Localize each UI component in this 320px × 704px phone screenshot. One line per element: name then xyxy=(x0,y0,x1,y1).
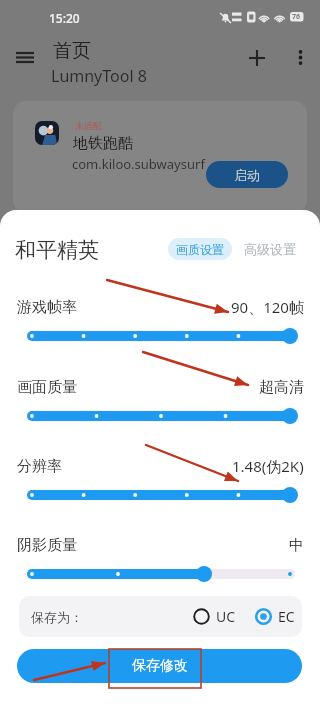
button[interactable]: 启动 xyxy=(206,161,288,188)
button[interactable]: Add xyxy=(239,40,275,76)
button[interactable]: 高级设置 xyxy=(238,238,301,260)
staticText: 保存为： xyxy=(31,609,83,625)
staticText: 地铁跑酷 xyxy=(73,134,133,153)
staticText: 中 xyxy=(289,536,304,555)
staticText: 90、120帧 xyxy=(231,297,304,317)
button[interactable]: 画质设置 xyxy=(168,238,232,260)
staticText: 阴影质量 xyxy=(17,536,77,555)
button[interactable]: More options xyxy=(285,42,316,73)
staticText: 游戏帧率 xyxy=(17,298,77,317)
staticText: 超高清 xyxy=(259,378,304,397)
staticText: 高级设置 xyxy=(244,241,296,257)
staticText: LumnyTool 8 xyxy=(51,65,147,87)
button[interactable] xyxy=(0,564,320,584)
button[interactable]: UC xyxy=(193,607,236,626)
staticText: 1.48(伪2K) xyxy=(232,456,304,476)
staticText: 画质设置 xyxy=(176,242,224,257)
staticText: 画面质量 xyxy=(17,378,77,397)
staticText: 首页 xyxy=(53,39,91,63)
staticText: 未适配 xyxy=(75,120,102,131)
button[interactable] xyxy=(0,326,320,346)
staticText: 分辨率 xyxy=(17,457,62,476)
staticText: EC xyxy=(278,607,295,626)
staticText: 启动 xyxy=(234,167,260,183)
staticText: 和平精英 xyxy=(15,237,99,263)
staticText: com.kiloo.subwaysurf xyxy=(72,155,205,173)
button[interactable]: EC xyxy=(255,607,295,626)
button[interactable]: Menu xyxy=(8,40,42,74)
staticText: 保存修改 xyxy=(132,657,188,675)
button[interactable]: 未适配 xyxy=(13,101,307,213)
staticText: 15:20 xyxy=(49,10,80,26)
button[interactable] xyxy=(0,406,320,426)
button[interactable]: 保存修改 xyxy=(17,649,302,683)
staticText: 76 xyxy=(292,12,301,22)
staticText: UC xyxy=(216,607,236,626)
button[interactable] xyxy=(0,485,320,505)
